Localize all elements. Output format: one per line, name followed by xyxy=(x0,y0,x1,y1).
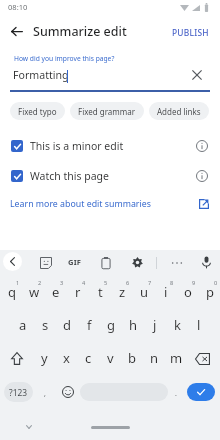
staticText: q xyxy=(8,283,16,301)
button[interactable]: f xyxy=(78,308,100,341)
button[interactable]: ?123 xyxy=(4,382,33,402)
staticText: . xyxy=(175,389,177,399)
staticText: t xyxy=(98,283,103,301)
button[interactable]: b xyxy=(121,341,143,374)
button[interactable]: o xyxy=(177,275,199,308)
button[interactable]: Fixed grammar xyxy=(70,102,144,120)
button[interactable]: s xyxy=(34,308,56,341)
button[interactable]: p xyxy=(199,275,220,308)
staticText: i xyxy=(164,283,168,301)
staticText: u xyxy=(140,283,149,301)
button[interactable]: u xyxy=(133,275,155,308)
staticText: h xyxy=(129,316,138,334)
button[interactable]: Clear text xyxy=(187,65,207,85)
staticText: k xyxy=(174,316,181,334)
button[interactable]: k xyxy=(166,308,188,341)
button[interactable]: Navigate up xyxy=(4,18,30,44)
button[interactable]: Fixed typo xyxy=(10,102,65,120)
staticText: g xyxy=(107,316,115,334)
button[interactable]: Added links xyxy=(149,102,209,120)
button[interactable]: GIF xyxy=(65,253,85,271)
staticText: e xyxy=(52,283,60,301)
button[interactable]: n xyxy=(143,341,165,374)
staticText: f xyxy=(87,316,92,334)
button[interactable]: z xyxy=(111,275,133,308)
button[interactable]: More information xyxy=(193,167,211,185)
staticText: p xyxy=(206,283,214,301)
staticText: Fixed typo xyxy=(18,106,57,117)
button[interactable]: q xyxy=(1,275,23,308)
staticText: j xyxy=(153,316,157,334)
button[interactable]: This is a minor edit xyxy=(0,131,220,161)
button[interactable]: c xyxy=(77,341,99,374)
button[interactable]: . xyxy=(169,384,183,404)
button[interactable]: PUBLISH xyxy=(166,22,214,42)
button[interactable]: Shift xyxy=(0,341,33,374)
staticText: d xyxy=(63,316,71,334)
button[interactable]: Back xyxy=(3,252,22,271)
staticText: l xyxy=(197,316,201,334)
button[interactable]: w xyxy=(23,275,45,308)
button[interactable]: g xyxy=(100,308,122,341)
staticText: 0 xyxy=(214,279,218,287)
button[interactable]: r xyxy=(67,275,89,308)
staticText: n xyxy=(150,349,159,367)
staticText: v xyxy=(107,349,114,367)
staticText: Added links xyxy=(157,106,201,117)
staticText: ?123 xyxy=(9,387,28,398)
staticText: 1 xyxy=(16,279,20,287)
button[interactable]: t xyxy=(89,275,111,308)
button[interactable]: a xyxy=(12,308,34,341)
button[interactable]: Voice input xyxy=(195,251,218,274)
button[interactable]: Backspace xyxy=(187,341,220,374)
staticText: y xyxy=(41,349,48,367)
button[interactable]: Watch this page xyxy=(0,161,220,191)
staticText: 5 xyxy=(104,279,108,287)
staticText: Learn more about edit summaries xyxy=(10,198,151,210)
button[interactable]: x xyxy=(55,341,77,374)
staticText: Fixed grammar xyxy=(78,106,136,117)
staticText: How did you improve this page? xyxy=(14,54,115,63)
staticText: c xyxy=(85,349,92,367)
staticText: a xyxy=(19,316,27,334)
staticText: GIF xyxy=(68,257,82,267)
staticText: 8 xyxy=(170,279,174,287)
button[interactable]: Enter xyxy=(187,383,215,401)
button[interactable]: Learn more about edit summaries xyxy=(0,193,220,215)
button[interactable]: y xyxy=(33,341,55,374)
staticText: b xyxy=(128,349,136,367)
button[interactable]: More options xyxy=(166,252,188,274)
staticText: This is a minor edit xyxy=(30,139,124,153)
staticText: o xyxy=(184,283,192,301)
staticText: r xyxy=(75,283,81,301)
staticText: 9 xyxy=(192,279,196,287)
button[interactable]: e xyxy=(45,275,67,308)
staticText: 4 xyxy=(82,279,86,287)
staticText: 2 xyxy=(38,279,42,287)
button[interactable]: Settings xyxy=(127,252,148,273)
button[interactable]: j xyxy=(144,308,166,341)
button[interactable]: Clipboard xyxy=(95,252,117,274)
staticText: 7 xyxy=(148,279,152,287)
button[interactable]: , xyxy=(37,384,53,404)
staticText: , xyxy=(44,389,46,399)
button[interactable]: Stickers xyxy=(35,252,57,274)
staticText: PUBLISH xyxy=(172,27,209,38)
staticText: Summarize edit xyxy=(33,23,127,40)
button[interactable]: m xyxy=(165,341,187,374)
button[interactable]: i xyxy=(155,275,177,308)
staticText: w xyxy=(29,283,40,301)
button[interactable]: More information xyxy=(193,137,211,155)
staticText: x xyxy=(63,349,70,367)
button[interactable]: d xyxy=(56,308,78,341)
button[interactable]: l xyxy=(188,308,210,341)
button[interactable]: v xyxy=(99,341,121,374)
button[interactable]: Hide keyboard xyxy=(22,419,36,433)
staticText: m xyxy=(170,349,183,367)
staticText: 6 xyxy=(126,279,130,287)
button[interactable]: Emoji xyxy=(58,382,78,402)
staticText: Formatting xyxy=(13,68,69,82)
staticText: Watch this page xyxy=(30,169,109,183)
button[interactable]: h xyxy=(122,308,144,341)
